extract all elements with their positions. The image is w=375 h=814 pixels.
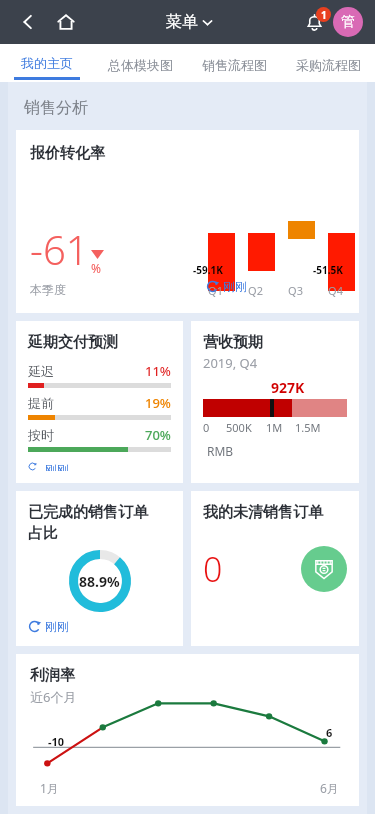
staticText: 我的未清销售订单 — [203, 503, 323, 522]
button[interactable]: 利润率 — [16, 654, 359, 806]
staticText: -61 — [30, 222, 89, 276]
staticText: 按时 — [28, 427, 54, 443]
staticText: 刚刚 — [223, 279, 247, 294]
staticText: 延期交付预测 — [28, 333, 118, 352]
button[interactable]: 销售流程图 — [187, 44, 281, 82]
staticText: 927K — [271, 378, 305, 397]
staticText: Q3 — [282, 283, 309, 298]
staticText: 总体模块图 — [108, 57, 173, 73]
button[interactable]: Notifications — [297, 5, 331, 39]
staticText: 销售分析 — [24, 98, 88, 118]
staticText: 1.5M — [295, 420, 321, 435]
staticText: 提前 — [28, 395, 54, 411]
staticText: Q2 — [242, 283, 269, 298]
staticText: % — [91, 260, 101, 276]
button[interactable]: 刚刚 — [28, 462, 69, 471]
staticText: 采购流程图 — [296, 57, 361, 73]
staticText: 1M — [266, 420, 283, 435]
button[interactable]: 报价转化率 — [16, 130, 359, 313]
button[interactable]: 菜单 — [166, 12, 213, 32]
staticText: 刚刚 — [45, 462, 69, 471]
button[interactable]: 我的未清销售订单 — [191, 491, 359, 646]
staticText: Q1 — [202, 283, 229, 298]
staticText: 我的主页 — [21, 55, 73, 71]
staticText: 88.9% — [79, 572, 120, 591]
staticText: 1 — [321, 8, 327, 22]
staticText: 销售流程图 — [202, 57, 267, 73]
staticText: 500K — [226, 420, 252, 435]
button[interactable]: 我的主页 — [0, 44, 93, 82]
staticText: 0 — [203, 546, 223, 592]
staticText: -51.5K — [313, 263, 343, 277]
button[interactable]: 总体模块图 — [93, 44, 187, 82]
button[interactable]: 采购流程图 — [281, 44, 375, 82]
button[interactable]: 延期交付预测 — [16, 321, 183, 483]
button[interactable]: 已完成的销售订单 占比 — [16, 491, 183, 646]
staticText: 0 — [203, 420, 210, 435]
staticText: -59.1K — [193, 263, 223, 277]
staticText: 近6个月 — [30, 688, 77, 706]
staticText: 70% — [145, 426, 171, 444]
staticText: 已完成的销售订单 占比 — [28, 503, 148, 543]
button[interactable]: 营收预期 — [191, 321, 359, 483]
staticText: Q4 — [322, 283, 349, 298]
button[interactable]: Profile — [333, 7, 363, 37]
staticText: 1月 — [40, 780, 59, 796]
staticText: 11% — [145, 362, 171, 380]
staticText: 2019, Q4 — [203, 354, 258, 372]
staticText: 营收预期 — [203, 333, 263, 352]
button[interactable]: Home — [50, 6, 82, 38]
staticText: -10 — [48, 734, 65, 749]
staticText: 6 — [326, 725, 333, 740]
button[interactable]: Back — [12, 6, 44, 38]
staticText: RMB — [207, 443, 234, 459]
staticText: 本季度 — [30, 282, 66, 297]
staticText: 菜单 — [166, 12, 198, 32]
staticText: 利润率 — [30, 666, 75, 685]
button[interactable]: 刚刚 — [206, 279, 247, 294]
staticText: 延迟 — [28, 363, 54, 379]
staticText: 报价转化率 — [30, 144, 105, 163]
staticText: 刚刚 — [45, 619, 69, 634]
staticText: 管 — [341, 13, 355, 31]
staticText: 6月 — [320, 780, 339, 796]
button[interactable]: 刚刚 — [28, 619, 69, 634]
staticText: 19% — [145, 394, 171, 412]
